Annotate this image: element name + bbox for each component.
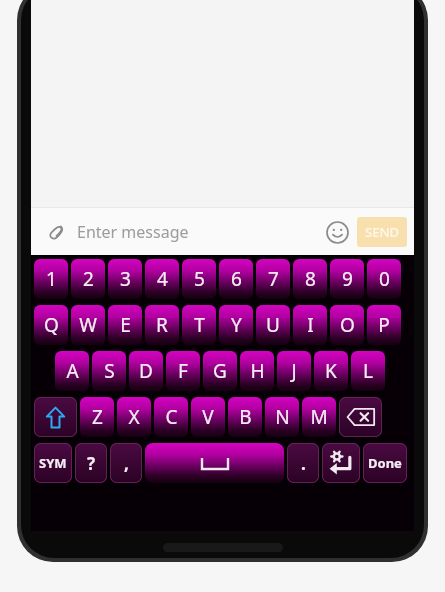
staticText: T [194,312,205,338]
button[interactable]: SEND [357,217,407,247]
staticText: P [378,312,390,338]
button[interactable]: S [92,351,126,391]
button[interactable]: G [203,351,237,391]
staticText: Enter message [77,221,189,243]
button[interactable]: SYM [34,443,72,483]
button[interactable]: 6 [219,259,253,299]
staticText: D [139,358,153,384]
button[interactable]: Backspace [339,397,382,437]
button[interactable]: 0 [367,259,401,299]
button[interactable]: Insert emoji [320,215,354,249]
staticText: F [178,358,188,384]
staticText: G [213,358,227,384]
staticText: , [124,452,129,475]
staticText: O [340,312,355,338]
staticText: 0 [379,266,390,292]
button[interactable]: W [71,305,105,345]
button[interactable]: B [228,397,262,437]
staticText: J [291,358,297,384]
button[interactable]: Space [145,443,284,483]
staticText: 1 [46,266,57,292]
button[interactable]: Done [363,443,407,483]
button[interactable]: R [145,305,179,345]
button[interactable]: O [330,305,364,345]
button[interactable]: Shift [34,397,77,437]
button[interactable]: U [256,305,290,345]
staticText: Done [368,454,402,472]
staticText: C [165,404,178,430]
button[interactable]: 3 [108,259,142,299]
button[interactable]: , [110,443,142,483]
staticText: H [250,358,265,384]
staticText: 4 [157,266,168,292]
button[interactable]: H [240,351,274,391]
staticText: S [104,358,115,384]
button[interactable]: X [117,397,151,437]
button[interactable]: L [351,351,385,391]
button[interactable]: J [277,351,311,391]
staticText: 9 [342,266,353,292]
staticText: . [301,452,306,475]
staticText: SYM [39,454,67,472]
staticText: X [128,404,140,430]
button[interactable]: V [191,397,225,437]
staticText: 2 [83,266,94,292]
button[interactable]: Attach file [40,216,72,248]
button[interactable]: E [108,305,142,345]
button[interactable]: D [129,351,163,391]
button[interactable]: T [182,305,216,345]
button[interactable]: 9 [330,259,364,299]
button[interactable]: P [367,305,401,345]
button[interactable]: 8 [293,259,327,299]
staticText: 6 [231,266,242,292]
staticText: M [310,404,328,430]
button[interactable]: F [166,351,200,391]
button[interactable]: A [55,351,89,391]
staticText: W [79,312,97,338]
button[interactable]: Z [80,397,114,437]
button[interactable]: . [287,443,319,483]
staticText: Q [44,312,59,338]
button[interactable]: 7 [256,259,290,299]
staticText: Z [92,404,103,430]
staticText: I [307,312,314,338]
button[interactable]: 4 [145,259,179,299]
staticText: V [202,404,214,430]
staticText: 5 [194,266,205,292]
staticText: E [120,312,131,338]
staticText: 8 [305,266,316,292]
staticText: SEND [365,223,399,241]
staticText: A [66,358,79,384]
button[interactable]: 1 [34,259,68,299]
staticText: R [156,312,168,338]
button[interactable]: Q [34,305,68,345]
button[interactable]: I [293,305,327,345]
staticText: B [239,404,252,430]
button[interactable]: N [265,397,299,437]
staticText: L [363,358,373,384]
button[interactable]: K [314,351,348,391]
staticText: ? [87,452,96,475]
staticText: 3 [120,266,131,292]
button[interactable]: Enter [322,443,360,483]
button[interactable]: 2 [71,259,105,299]
staticText: U [266,312,280,338]
staticText: N [275,404,290,430]
button[interactable]: ? [75,443,107,483]
button[interactable]: C [154,397,188,437]
staticText: 7 [268,266,279,292]
staticText: K [325,358,337,384]
staticText: Y [231,312,242,338]
button[interactable]: 5 [182,259,216,299]
button[interactable]: M [302,397,336,437]
button[interactable]: Y [219,305,253,345]
